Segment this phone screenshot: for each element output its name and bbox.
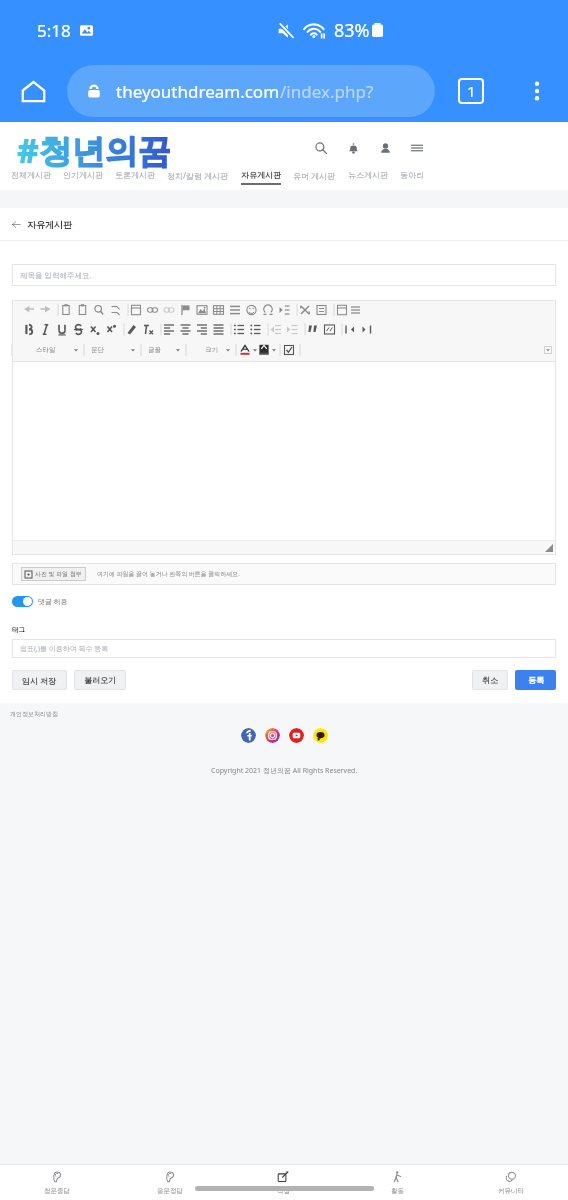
staticText: 83%: [334, 18, 370, 43]
staticText: theyouthdream.com: [116, 80, 280, 103]
button[interactable]: YouTube: [289, 728, 304, 743]
staticText: 글꼴: [148, 346, 161, 354]
button[interactable]: 크기: [201, 339, 232, 361]
staticText: 등록: [528, 675, 544, 685]
staticText: 사진 및 파일 첨부: [35, 570, 82, 578]
button[interactable]: Facebook: [241, 728, 256, 743]
staticText: 스타일: [36, 346, 56, 354]
staticText: 응문정답: [157, 1187, 183, 1195]
button[interactable]: 전체게시판: [5, 170, 57, 180]
staticText: 크기: [205, 346, 218, 354]
button[interactable]: 인기게시판: [57, 170, 109, 180]
button[interactable]: 개인정보처리방침: [10, 710, 58, 718]
button[interactable]: 제목을 입력해주세요.: [12, 264, 556, 286]
button[interactable]: 취소: [472, 670, 508, 690]
button[interactable]: 작성: [226, 1171, 340, 1200]
button[interactable]: 불러오기: [74, 670, 126, 690]
button[interactable]: 스타일: [32, 339, 80, 361]
button[interactable]: 사진 및 파일 첨부: [21, 567, 86, 581]
button[interactable]: 정치/칼럼 게시판: [161, 170, 235, 181]
staticText: 태그: [12, 626, 25, 634]
button[interactable]: Tabs: [452, 72, 490, 110]
button[interactable]: Home: [14, 72, 52, 110]
button[interactable]: Menu: [407, 138, 427, 158]
staticText: /index.php?: [280, 80, 374, 103]
button[interactable]: 뉴스게시판: [342, 170, 394, 180]
button[interactable]: 활동: [340, 1171, 454, 1200]
button[interactable]: 커뮤니티: [454, 1171, 568, 1200]
staticText: 1: [467, 81, 476, 101]
staticText: 작성: [277, 1187, 290, 1195]
button[interactable]: theyouthdream.com: [67, 65, 435, 117]
staticText: 취소: [482, 675, 498, 685]
button[interactable]: 글꼴: [144, 339, 182, 361]
button[interactable]: 응문정답: [113, 1171, 226, 1200]
button[interactable]: 동아리: [394, 170, 430, 180]
staticText: 임시 저장: [22, 675, 57, 686]
button[interactable]: Search: [311, 138, 331, 158]
button[interactable]: 임시 저장: [12, 670, 67, 690]
staticText: 여기에 파일을 끌어 놓거나 왼쪽의 버튼을 클릭하세요.: [97, 570, 240, 578]
staticText: 5:18: [37, 19, 71, 42]
staticText: Copyright 2021 청년의꿈 All Rights Reserved.: [211, 766, 358, 776]
button[interactable]: Account: [375, 138, 395, 158]
staticText: 자유게시판: [27, 219, 72, 230]
button[interactable]: #청년의꿈: [17, 128, 171, 170]
staticText: 불러오기: [84, 675, 116, 685]
staticText: #청년의꿈: [17, 128, 171, 170]
button[interactable]: 쉼표(,)를 이용하여 복수 등록: [12, 639, 556, 658]
button[interactable]: 등록: [515, 670, 556, 690]
staticText: 제목을 입력해주세요.: [20, 270, 92, 280]
staticText: 활동: [391, 1187, 404, 1195]
button[interactable]: 문단: [87, 339, 137, 361]
button[interactable]: 자유게시판: [12, 219, 72, 230]
staticText: 청문중답: [44, 1187, 70, 1195]
button[interactable]: Instagram: [265, 728, 280, 743]
button[interactable]: More options: [520, 74, 554, 108]
staticText: 커뮤니티: [498, 1187, 524, 1195]
button[interactable]: KakaoTalk: [313, 728, 328, 743]
staticText: 댓글 허용: [38, 597, 68, 607]
staticText: 문단: [91, 346, 104, 354]
button[interactable]: Notifications: [343, 138, 363, 158]
button[interactable]: Collapse toolbar: [544, 346, 552, 354]
button[interactable]: 자유게시판: [235, 170, 287, 180]
button[interactable]: 유머 게시판: [287, 170, 342, 181]
staticText: 쉼표(,)를 이용하여 복수 등록: [20, 644, 109, 654]
button[interactable]: 토론게시판: [109, 170, 161, 180]
button[interactable]: 청문중답: [0, 1171, 113, 1200]
button[interactable]: 댓글 허용: [12, 596, 68, 607]
